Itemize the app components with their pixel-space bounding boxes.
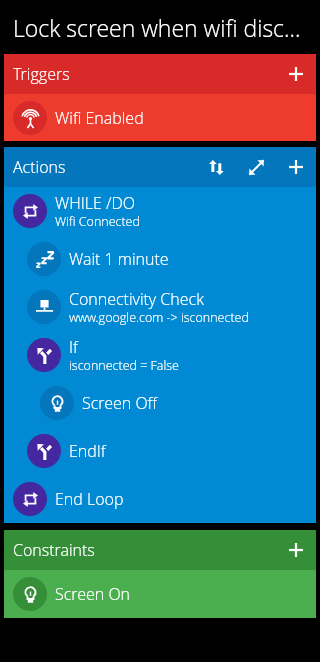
staticText: Triggers [13, 63, 70, 85]
staticText: WHILE /DO [55, 192, 135, 214]
staticText: Wifi Connected [55, 213, 140, 230]
staticText: Screen On [55, 583, 131, 605]
button[interactable]: WHILE /DO [4, 187, 316, 235]
button[interactable]: If [4, 331, 316, 379]
button[interactable]: Screen Off [4, 379, 316, 427]
button[interactable]: End Loop [4, 475, 316, 523]
button[interactable]: Connectivity Check [4, 283, 316, 331]
staticText: Wait 1 minute [69, 248, 169, 270]
staticText: Wifi Enabled [55, 107, 144, 129]
staticText: isconnected = False [69, 357, 179, 374]
staticText: Connectivity Check [69, 288, 204, 310]
staticText: EndIf [69, 440, 106, 462]
button[interactable]: Expand all [236, 147, 276, 187]
button[interactable]: Screen On [4, 570, 316, 618]
staticText: www.google.com -> isconnected [69, 309, 249, 326]
button[interactable]: Add Constraints [276, 530, 316, 570]
button[interactable]: Add Actions [276, 147, 316, 187]
staticText: End Loop [55, 488, 124, 510]
button[interactable]: EndIf [4, 427, 316, 475]
staticText: Screen Off [82, 392, 158, 414]
button[interactable]: Sort actions [196, 147, 236, 187]
staticText: Actions [13, 156, 66, 178]
staticText: Lock screen when wifi disc… [13, 12, 301, 43]
button[interactable]: Add Triggers [276, 54, 316, 94]
button[interactable]: Wifi Enabled [4, 94, 316, 141]
button[interactable]: Wait 1 minute [4, 235, 316, 283]
staticText: Constraints [13, 539, 95, 561]
staticText: If [69, 336, 78, 358]
